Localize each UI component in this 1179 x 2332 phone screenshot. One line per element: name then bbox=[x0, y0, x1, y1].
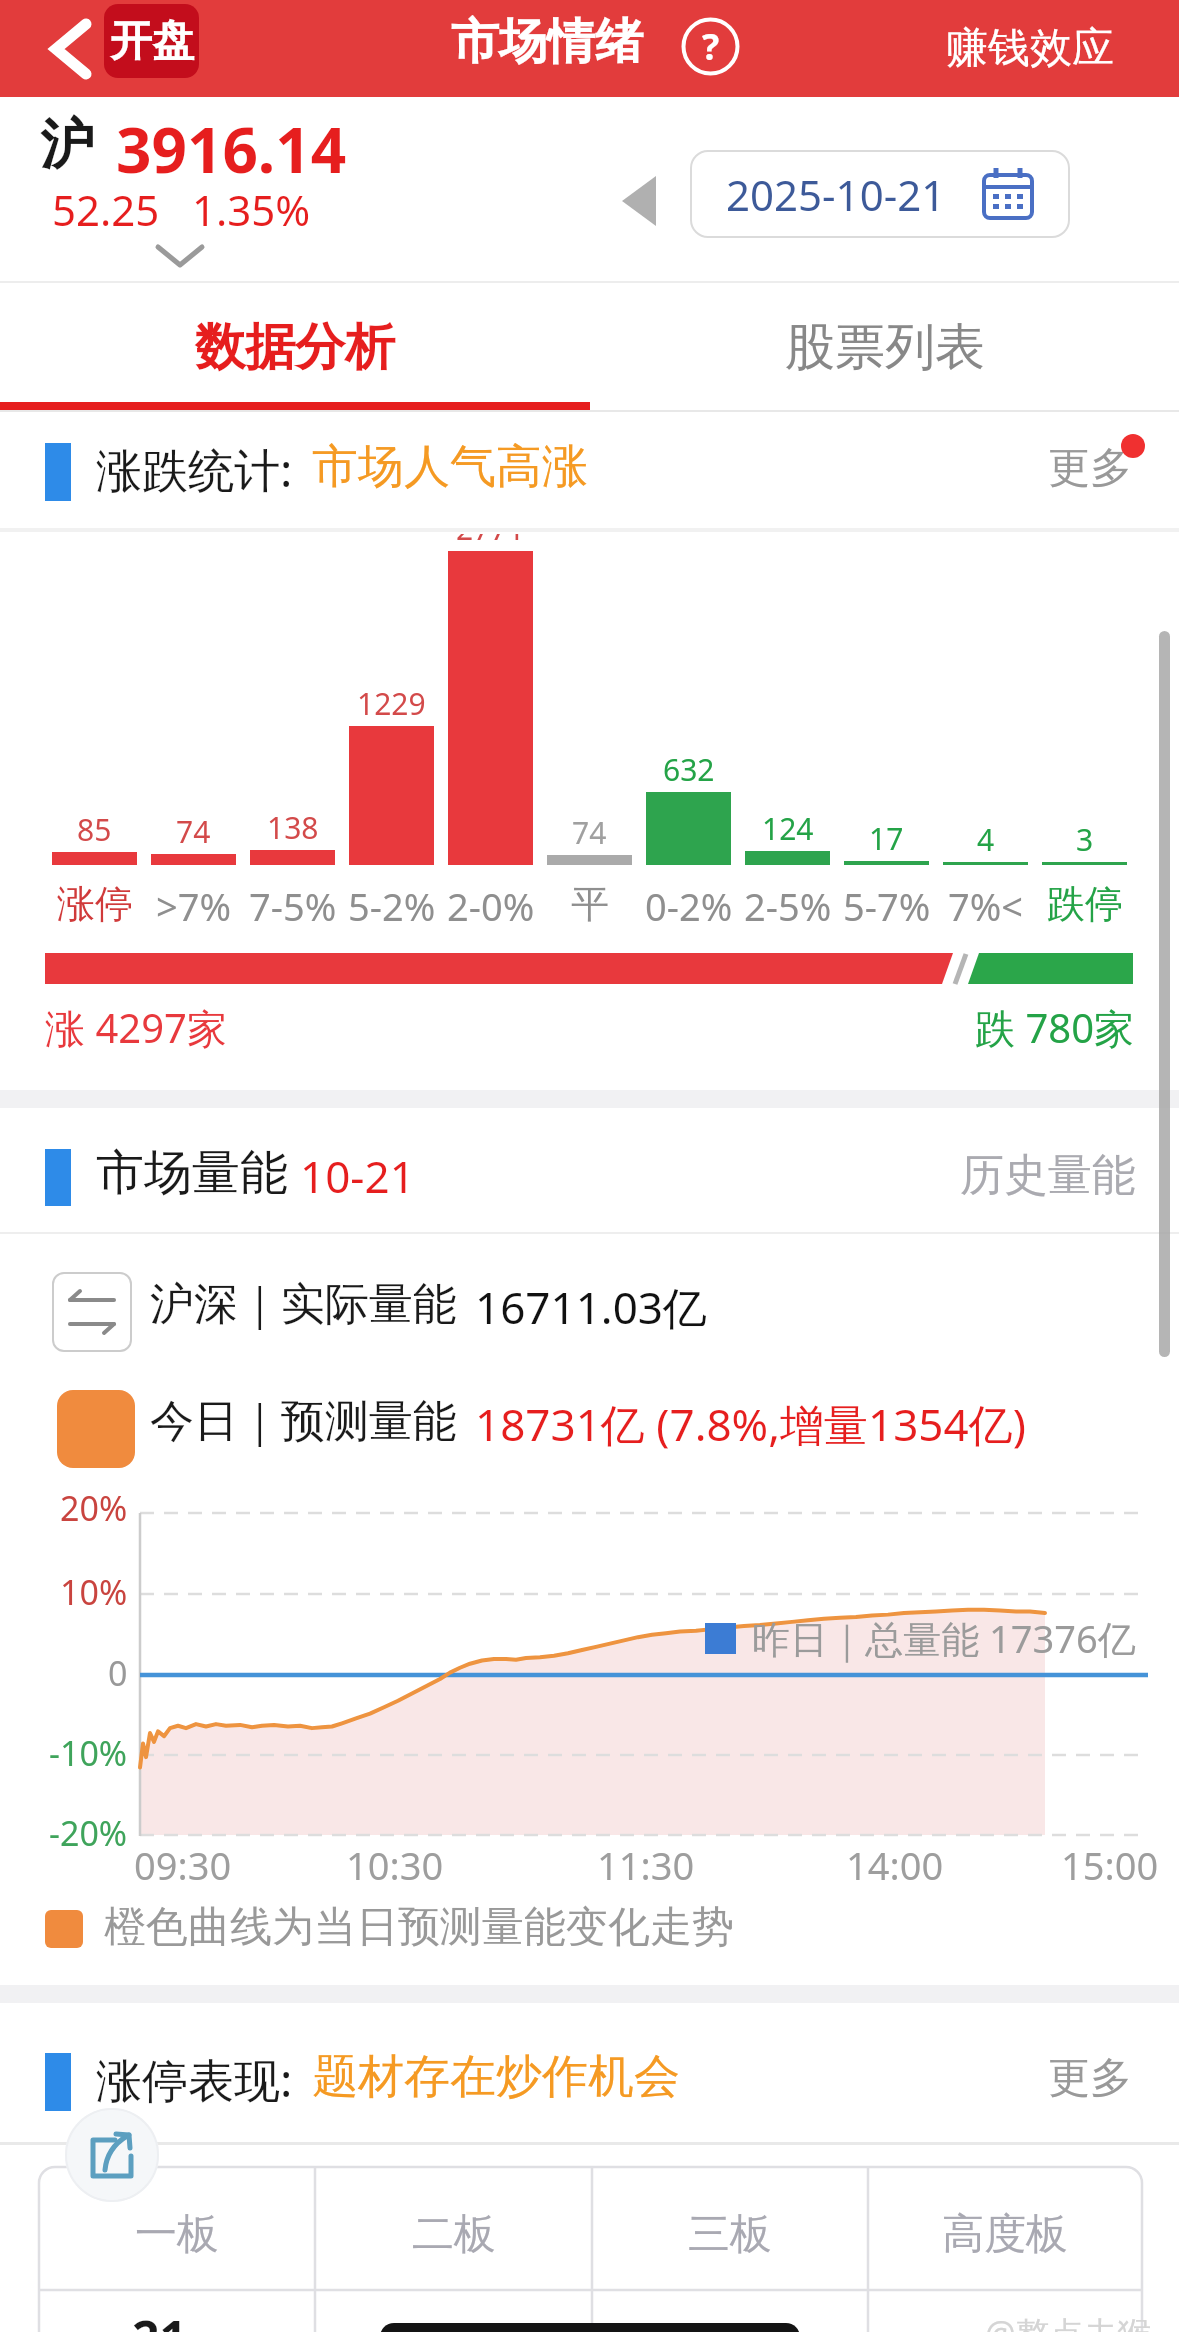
staticText: 市场人气高涨 bbox=[312, 438, 588, 496]
staticText: 一板 bbox=[135, 2208, 219, 2261]
staticText: 18731亿 (7.8%,增量1354亿) bbox=[475, 1394, 1026, 1454]
button[interactable]: 股票列表 bbox=[590, 283, 1179, 412]
staticText: 74 bbox=[572, 812, 607, 853]
staticText: 涨跌统计: bbox=[96, 438, 293, 501]
staticText: 2-5% bbox=[744, 880, 832, 932]
staticText: -10% bbox=[49, 1730, 128, 1776]
staticText: 涨 4297家 bbox=[45, 1000, 227, 1055]
staticText: 21 bbox=[132, 2305, 187, 2332]
staticText: 3916.14 bbox=[116, 107, 347, 191]
staticText: 14:00 bbox=[846, 1839, 944, 1891]
button[interactable]: 开盘 bbox=[104, 4, 199, 78]
staticText: 今日｜预测量能 bbox=[150, 1394, 458, 1449]
staticText: @整点去猴 bbox=[985, 2310, 1152, 2332]
staticText: 涨停 bbox=[57, 880, 133, 928]
staticText: 11:30 bbox=[597, 1839, 695, 1891]
staticText: 三板 bbox=[688, 2208, 772, 2261]
staticText: 开盘 bbox=[110, 15, 194, 68]
staticText: 10-21 bbox=[300, 1146, 415, 1206]
staticText: 2771 bbox=[456, 508, 525, 549]
staticText: 高度板 bbox=[942, 2208, 1068, 2261]
staticText: 4 bbox=[977, 819, 995, 860]
staticText: 更多 bbox=[1048, 442, 1132, 495]
button[interactable] bbox=[30, 0, 110, 97]
button[interactable]: 数据分析 bbox=[0, 283, 590, 412]
staticText: 2025-10-21 bbox=[726, 166, 946, 223]
staticText: 跌停 bbox=[1047, 880, 1123, 928]
staticText: 数据分析 bbox=[195, 316, 395, 379]
staticText: 跌 780家 bbox=[975, 1000, 1135, 1055]
staticText: 10:30 bbox=[346, 1839, 444, 1891]
staticText: 0-2% bbox=[645, 880, 733, 932]
button[interactable]: 历史量能 bbox=[945, 1140, 1140, 1210]
staticText: 沪深｜实际量能 bbox=[150, 1277, 458, 1332]
staticText: 平 bbox=[571, 880, 609, 928]
staticText: 昨日｜总量能 17376亿 bbox=[752, 1612, 1136, 1664]
staticText: 1.35% bbox=[192, 181, 311, 238]
staticText: 632 bbox=[663, 749, 715, 790]
staticText: 138 bbox=[267, 807, 319, 848]
staticText: 历史量能 bbox=[960, 1148, 1136, 1203]
staticText: 7%< bbox=[948, 880, 1024, 932]
staticText: 赚钱效应 bbox=[946, 22, 1114, 75]
staticText: 124 bbox=[762, 808, 814, 849]
staticText: -20% bbox=[49, 1810, 128, 1856]
staticText: 09:30 bbox=[134, 1839, 232, 1891]
staticText: 更多 bbox=[1048, 2052, 1132, 2105]
staticText: 74 bbox=[176, 811, 211, 852]
staticText: 股票列表 bbox=[785, 316, 985, 379]
staticText: ? bbox=[702, 22, 720, 71]
staticText: 20% bbox=[60, 1485, 128, 1531]
staticText: 题材存在炒作机会 bbox=[312, 2048, 680, 2106]
button[interactable]: 2025-10-21 bbox=[690, 150, 1070, 238]
staticText: 2-0% bbox=[447, 880, 535, 932]
staticText: 市场情绪 bbox=[451, 12, 643, 72]
button[interactable] bbox=[65, 2108, 159, 2202]
staticText: 7-5% bbox=[249, 880, 337, 932]
staticText: 17 bbox=[869, 818, 904, 859]
staticText: 5-7% bbox=[843, 880, 931, 932]
staticText: 0 bbox=[108, 1650, 128, 1696]
button[interactable]: ? bbox=[681, 17, 740, 76]
staticText: 沪 bbox=[40, 111, 94, 179]
staticText: 涨停表现: bbox=[96, 2048, 293, 2111]
staticText: 15:00 bbox=[1061, 1839, 1159, 1891]
button[interactable]: 更多 bbox=[1040, 2045, 1140, 2111]
button[interactable]: 赚钱效应 bbox=[925, 0, 1135, 97]
staticText: 二板 bbox=[412, 2208, 496, 2261]
staticText: 10% bbox=[60, 1569, 128, 1615]
staticText: 市场量能 bbox=[96, 1143, 288, 1203]
staticText: 3 bbox=[1076, 819, 1094, 860]
staticText: 52.25 bbox=[52, 181, 160, 238]
staticText: 85 bbox=[77, 809, 112, 850]
staticText: 16711.03亿 bbox=[475, 1277, 707, 1337]
staticText: >7% bbox=[156, 880, 232, 932]
staticText: 5-2% bbox=[348, 880, 436, 932]
staticText: 橙色曲线为当日预测量能变化走势 bbox=[104, 1901, 734, 1954]
staticText: 1229 bbox=[357, 683, 426, 724]
button[interactable]: 更多 bbox=[1040, 435, 1140, 501]
